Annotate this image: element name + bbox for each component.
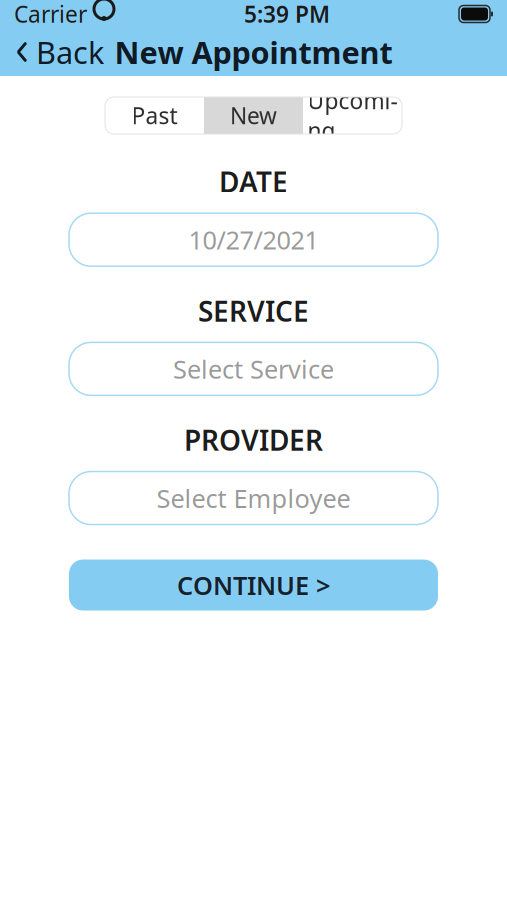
button[interactable]: CONTINUE > <box>69 559 438 610</box>
staticText: Select Service <box>173 352 334 386</box>
staticText: Past <box>131 100 177 130</box>
staticText: Select Employee <box>156 481 350 515</box>
button[interactable]: 10/27/2021 <box>69 213 438 266</box>
staticText: New Appointment <box>114 32 392 72</box>
staticText: CONTINUE > <box>177 568 330 602</box>
button[interactable]: Select Employee <box>69 471 438 524</box>
staticText: New <box>230 100 277 130</box>
staticText: Carrier <box>14 0 87 29</box>
staticText: PROVIDER <box>184 421 323 459</box>
button[interactable]: Past <box>105 97 204 134</box>
staticText: SERVICE <box>198 292 309 329</box>
button[interactable]: Upcoming <box>303 97 402 134</box>
staticText: 5:39 PM <box>244 0 330 29</box>
button[interactable]: New <box>204 97 303 134</box>
button[interactable]: Select Service <box>69 342 438 395</box>
staticText: Upcoming <box>307 85 397 146</box>
staticText: Back <box>36 32 104 72</box>
staticText: 10/27/2021 <box>188 223 318 256</box>
button[interactable]: Back <box>0 28 120 76</box>
staticText: DATE <box>219 163 288 200</box>
